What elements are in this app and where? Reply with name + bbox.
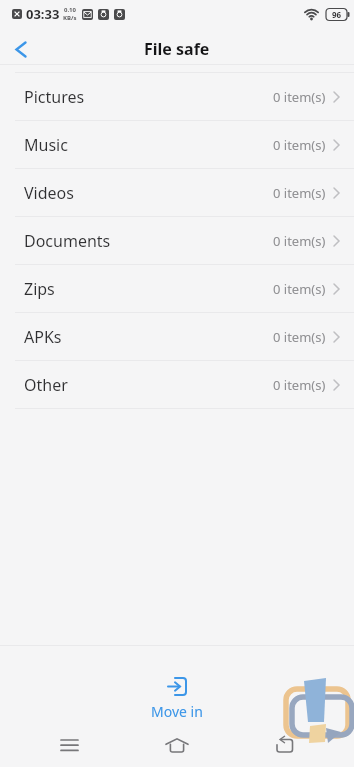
button[interactable] [47,723,91,767]
button[interactable]: APKs [0,313,354,361]
staticText: 0 item(s) [273,184,326,202]
button[interactable] [155,723,199,767]
staticText: 03:33 [26,5,60,23]
staticText: File safe [144,38,210,60]
button[interactable]: Videos [0,169,354,217]
staticText: Documents [24,230,111,252]
button[interactable] [6,34,36,64]
button[interactable]: Move in [133,676,221,721]
staticText: 0 item(s) [273,328,326,346]
button[interactable]: Music [0,121,354,169]
button[interactable]: Other [0,361,354,409]
staticText: 96 [332,9,342,20]
staticText: 0 item(s) [273,136,326,154]
staticText: 0 item(s) [273,280,326,298]
staticText: Move in [151,702,203,721]
staticText: APKs [24,326,62,348]
staticText: 0.10 [64,6,76,14]
staticText: 0 item(s) [273,232,326,250]
staticText: Other [24,374,68,396]
button[interactable]: Zips [0,265,354,313]
staticText: Pictures [24,86,85,108]
button[interactable] [263,723,307,767]
button[interactable]: Pictures [0,73,354,121]
staticText: KB/s [63,14,77,22]
staticText: 0 item(s) [273,376,326,394]
button[interactable]: Documents [0,217,354,265]
staticText: 0 item(s) [273,88,326,106]
staticText: Videos [24,182,74,204]
staticText: Music [24,134,68,156]
staticText: Zips [24,278,55,300]
